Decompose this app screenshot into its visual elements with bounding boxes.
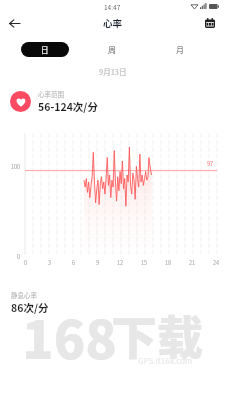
staticText: 静息心率	[11, 290, 37, 299]
staticText: 21	[189, 259, 196, 267]
staticText: 3	[48, 259, 52, 267]
staticText: 6	[72, 259, 76, 267]
button[interactable]: Calendar	[200, 13, 220, 33]
staticText: 15	[141, 259, 148, 267]
button[interactable]: 周	[95, 42, 128, 57]
staticText: 心率范围	[38, 89, 64, 98]
button[interactable]: Back	[4, 13, 24, 33]
staticText: 100	[11, 163, 21, 171]
button[interactable]: 月	[163, 42, 196, 57]
staticText: 12	[117, 259, 124, 267]
staticText: 0	[17, 253, 21, 261]
staticText: 86次/分	[11, 300, 49, 315]
staticText: 18	[165, 259, 172, 267]
staticText: 56-124次/分	[38, 99, 98, 114]
staticText: 月	[176, 44, 184, 56]
staticText: 周	[108, 44, 116, 56]
staticText: 14:47	[104, 2, 121, 11]
staticText: 97	[207, 160, 214, 168]
staticText: 日	[41, 44, 49, 55]
button[interactable]: 日	[21, 42, 69, 57]
staticText: 心率	[103, 16, 123, 30]
staticText: 9	[96, 259, 100, 267]
staticText: 0	[24, 259, 28, 267]
staticText: 下载	[111, 301, 203, 368]
staticText: GPS.it168.com	[138, 355, 193, 367]
staticText: 168	[22, 299, 118, 374]
staticText: 24	[213, 259, 220, 267]
staticText: 9月13日	[99, 66, 127, 77]
